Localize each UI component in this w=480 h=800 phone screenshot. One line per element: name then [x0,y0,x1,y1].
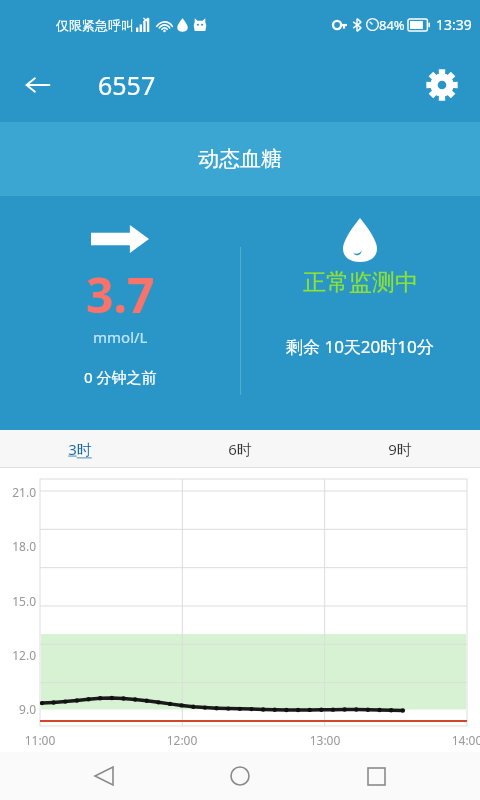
staticText: 正常监测中 [303,268,418,297]
staticText: 14:00 [447,732,480,748]
button[interactable]: Settings [418,61,466,109]
button[interactable]: Back [14,61,62,109]
button[interactable]: 6时 [160,430,320,467]
staticText: 84% [379,16,405,34]
button[interactable]: Recents [344,752,408,800]
staticText: 12:00 [162,732,202,748]
button[interactable]: Back [72,752,136,800]
staticText: 3时 [68,439,92,459]
staticText: mmol/L [93,327,148,347]
button[interactable]: 正常监测中 [240,196,480,430]
button[interactable]: Home [208,752,272,800]
staticText: 13:00 [305,732,345,748]
staticText: 仅限紧急呼叫 [56,17,134,33]
button[interactable]: 3时 [0,430,160,467]
staticText: 6时 [228,439,252,459]
staticText: 9.0 [4,701,36,717]
staticText: 9时 [388,439,412,459]
staticText: 12.0 [4,647,36,663]
staticText: 3.7 [86,262,155,327]
staticText: 21.0 [4,484,36,500]
staticText: 6557 [98,68,156,102]
button[interactable]: 3.7 [0,196,240,430]
staticText: 动态血糖 [198,146,282,172]
staticText: 15.0 [4,593,36,609]
staticText: 0 分钟之前 [84,367,157,387]
staticText: 11:00 [20,732,60,748]
staticText: 13:39 [436,15,472,34]
staticText: 18.0 [4,538,36,554]
button[interactable]: 9时 [320,430,480,467]
staticText: 剩余 10天20时10分 [286,335,434,358]
